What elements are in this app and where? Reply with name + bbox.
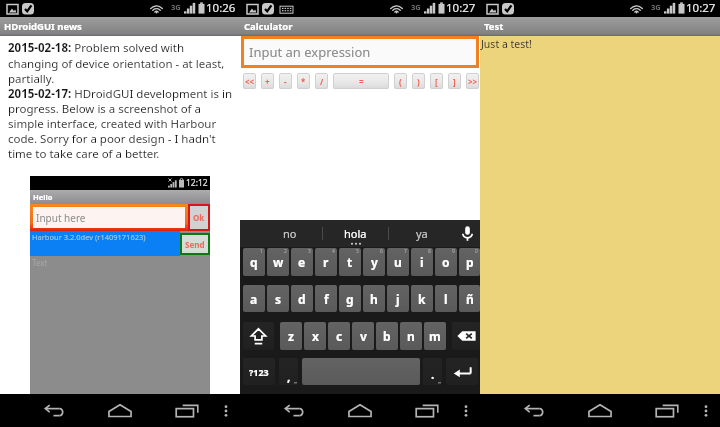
button[interactable]: Recent apps — [393, 394, 461, 427]
button[interactable]: - — [279, 73, 292, 89]
button[interactable]: n — [400, 322, 422, 350]
button[interactable]: ] — [448, 73, 461, 89]
button[interactable]: [ — [430, 73, 443, 89]
staticText: 0 — [475, 248, 478, 255]
staticText: 4 — [332, 248, 335, 255]
staticText: Hello — [33, 192, 53, 202]
button[interactable]: * — [297, 73, 310, 89]
button[interactable]: x — [304, 322, 326, 350]
button[interactable]: a — [243, 285, 265, 312]
staticText: s — [275, 291, 282, 307]
staticText: j — [396, 291, 400, 307]
button[interactable]: f — [315, 285, 337, 312]
button[interactable]: p — [459, 248, 480, 276]
button[interactable]: + — [261, 73, 274, 89]
staticText: h — [370, 291, 378, 307]
button[interactable]: Back — [500, 394, 566, 427]
button[interactable]: ñ — [459, 285, 480, 312]
button[interactable]: Recent apps — [153, 394, 221, 427]
button[interactable]: l — [435, 285, 457, 312]
button[interactable]: Ok — [190, 206, 208, 229]
button[interactable]: More options — [701, 394, 711, 427]
staticText: Input here — [36, 211, 86, 225]
staticText: q — [250, 254, 258, 270]
button[interactable]: Home — [86, 394, 153, 427]
button[interactable]: m — [424, 322, 446, 350]
button[interactable]: t — [339, 248, 361, 276]
staticText: ñ — [466, 291, 474, 307]
staticText: z — [288, 328, 294, 344]
button[interactable]: k — [411, 285, 433, 312]
staticText: ( — [399, 76, 402, 87]
button[interactable]: More options — [221, 394, 231, 427]
staticText: 3G — [651, 2, 661, 12]
button[interactable]: ya — [389, 220, 454, 247]
staticText: 12:12 — [186, 177, 208, 189]
button[interactable]: = — [333, 73, 389, 89]
staticText: Calculator — [244, 20, 293, 33]
staticText: 10:27 — [686, 0, 716, 16]
button[interactable]: << — [243, 73, 256, 89]
button[interactable]: Back — [20, 394, 86, 427]
button[interactable]: z — [280, 322, 302, 350]
button[interactable]: Home — [326, 394, 393, 427]
button[interactable]: More options — [461, 394, 471, 427]
staticText: y — [371, 254, 378, 270]
button[interactable]: v — [352, 322, 374, 350]
button[interactable]: , — [279, 358, 298, 385]
button[interactable]: i — [411, 248, 433, 276]
staticText: t — [347, 254, 353, 270]
button[interactable]: ( — [394, 73, 407, 89]
button[interactable]: Input here — [33, 207, 185, 228]
button[interactable]: c — [328, 322, 350, 350]
staticText: , — [287, 368, 291, 384]
button[interactable] — [302, 358, 420, 385]
button[interactable]: h — [363, 285, 385, 312]
button[interactable]: w — [267, 248, 289, 276]
staticText: 1 — [260, 248, 263, 255]
staticText: k — [418, 291, 426, 307]
staticText: 5 — [356, 248, 359, 255]
staticText: f — [324, 291, 329, 307]
button[interactable]: Send — [182, 235, 208, 253]
staticText: r — [323, 254, 329, 270]
staticText: x — [312, 328, 319, 344]
button[interactable] — [452, 322, 480, 350]
button[interactable]: / — [315, 73, 328, 89]
button[interactable]: q — [243, 248, 265, 276]
button[interactable]: r — [315, 248, 337, 276]
staticText: 2015-02-18: Problem solved with changing… — [8, 40, 232, 161]
staticText: u — [394, 254, 402, 270]
button[interactable]: e — [291, 248, 313, 276]
button[interactable]: Recent apps — [633, 394, 701, 427]
staticText: g — [346, 291, 354, 307]
staticText: Text — [32, 257, 48, 268]
button[interactable]: g — [339, 285, 361, 312]
button[interactable] — [446, 358, 478, 385]
button[interactable]: j — [387, 285, 409, 312]
button[interactable]: no — [258, 220, 322, 247]
staticText: w — [273, 254, 284, 270]
button[interactable]: ) — [412, 73, 425, 89]
button[interactable]: s — [267, 285, 289, 312]
button[interactable]: Voice input — [454, 220, 480, 247]
button[interactable]: Back — [260, 394, 326, 427]
staticText: 2 — [284, 248, 287, 255]
staticText: ] — [453, 76, 456, 87]
button[interactable]: . — [423, 358, 442, 385]
button[interactable]: b — [376, 322, 398, 350]
button[interactable] — [243, 322, 274, 350]
button[interactable]: Input an expression — [244, 39, 476, 65]
button[interactable]: hola — [323, 220, 388, 247]
button[interactable]: y — [363, 248, 385, 276]
staticText: [ — [435, 76, 438, 87]
button[interactable]: >> — [466, 73, 479, 89]
button[interactable]: u — [387, 248, 409, 276]
button[interactable]: Home — [566, 394, 633, 427]
staticText: HDroidGUI news — [4, 20, 82, 33]
button[interactable]: d — [291, 285, 313, 312]
button[interactable]: ?123 — [243, 358, 275, 385]
staticText: e — [298, 254, 306, 270]
staticText: - — [284, 76, 287, 87]
button[interactable]: o — [435, 248, 457, 276]
